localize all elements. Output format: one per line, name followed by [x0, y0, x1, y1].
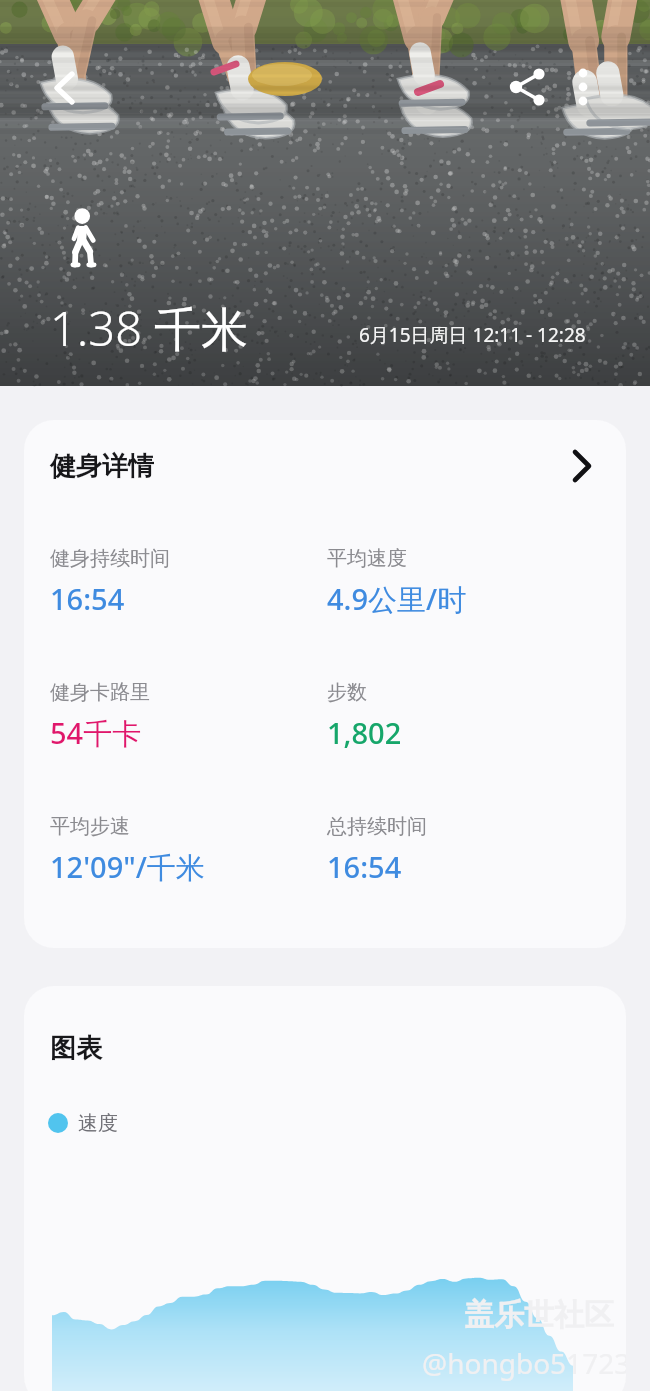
staticText: 健身详情 [50, 450, 154, 483]
button[interactable]: More options [554, 58, 612, 116]
staticText: 步数 [327, 680, 367, 705]
button[interactable]: 健身持续时间 [50, 546, 326, 618]
staticText: 健身卡路里 [50, 680, 150, 705]
button[interactable]: 平均步速 [50, 814, 326, 887]
staticText: 总持续时间 [327, 814, 427, 839]
staticText: 16:54 [327, 847, 402, 886]
button[interactable]: 总持续时间 [327, 814, 603, 886]
button[interactable]: 速度 [48, 1106, 118, 1140]
staticText: 1,802 [327, 713, 402, 752]
button[interactable]: 步数 [327, 680, 603, 752]
button[interactable]: 健身卡路里 [50, 680, 326, 753]
button[interactable]: 平均速度 [327, 546, 603, 619]
staticText: 健身持续时间 [50, 546, 170, 571]
staticText: @hongbo517230 [422, 1344, 626, 1382]
staticText: 盖乐世社区 [464, 1296, 614, 1334]
staticText: 平均速度 [327, 546, 407, 571]
staticText: 16:54 [50, 579, 125, 618]
staticText: 平均步速 [50, 814, 130, 839]
staticText: 速度 [78, 1111, 118, 1136]
button[interactable]: Share [499, 58, 557, 116]
staticText: 6月15日周日 12:11 - 12:28 [359, 322, 586, 348]
staticText: 图表 [50, 1032, 102, 1065]
staticText: 54千卡 [50, 713, 142, 753]
staticText: 12'09"/千米 [50, 847, 205, 887]
staticText: 1.38 千米 [50, 296, 249, 360]
button[interactable]: Back [34, 58, 94, 118]
button[interactable]: 健身详情 [24, 420, 626, 512]
staticText: 4.9公里/时 [327, 579, 467, 619]
